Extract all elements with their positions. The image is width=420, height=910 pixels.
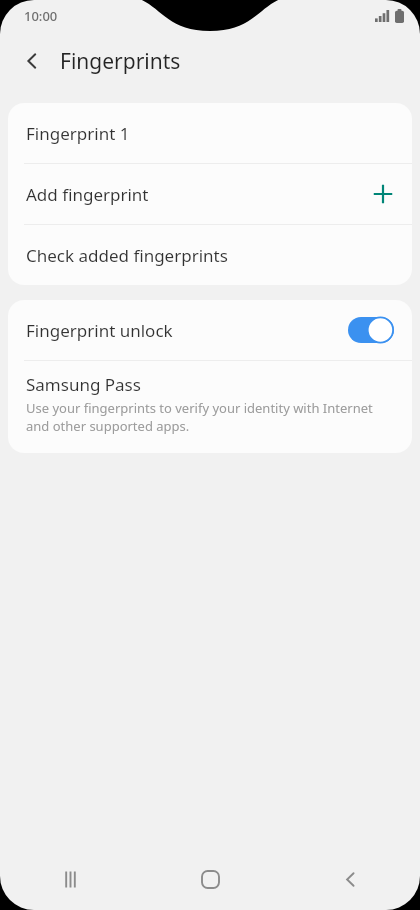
button[interactable]: Fingerprint 1 xyxy=(8,103,412,163)
button[interactable]: Check added fingerprints xyxy=(8,225,412,285)
button[interactable]: Recents xyxy=(0,848,140,910)
button[interactable]: Back xyxy=(10,39,54,83)
button[interactable]: Fingerprint unlock xyxy=(8,300,412,360)
staticText: Fingerprint 1 xyxy=(26,122,130,145)
button[interactable]: Back xyxy=(280,848,420,910)
staticText: Fingerprint unlock xyxy=(26,319,348,342)
button[interactable]: Add fingerprint xyxy=(8,164,412,224)
button[interactable]: Fingerprint unlock toggle xyxy=(348,317,394,343)
staticText: Fingerprints xyxy=(60,47,181,76)
staticText: Samsung Pass xyxy=(26,373,141,396)
button[interactable]: Home xyxy=(140,848,280,910)
staticText: Add fingerprint xyxy=(26,183,372,206)
staticText: Use your fingerprints to verify your ide… xyxy=(26,399,394,435)
staticText: 10:00 xyxy=(24,7,58,25)
staticText: Check added fingerprints xyxy=(26,244,228,267)
button[interactable]: Samsung Pass xyxy=(8,361,412,453)
